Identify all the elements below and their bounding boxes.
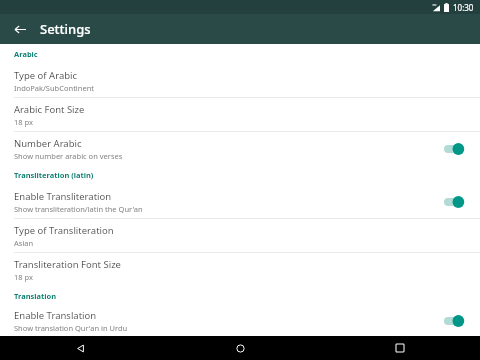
- staticText: Translation: [14, 291, 57, 301]
- button[interactable]: Toggle: [440, 140, 466, 158]
- staticText: Asian: [14, 238, 34, 248]
- staticText: Show translation Qur'an in Urdu: [14, 323, 128, 333]
- button[interactable]: Type of Transliteration: [0, 219, 480, 252]
- button[interactable]: Type of Arabic: [0, 64, 480, 97]
- staticText: Arabic: [14, 49, 38, 59]
- button[interactable]: Arabic Font Size: [0, 98, 480, 131]
- staticText: IndoPak/SubContinent: [14, 83, 94, 93]
- staticText: Transliteration (latin): [14, 170, 94, 180]
- staticText: Number Arabic: [14, 137, 82, 150]
- staticText: Show transliteration/latin the Qur'an: [14, 204, 143, 214]
- staticText: Type of Transliteration: [14, 224, 114, 237]
- button[interactable]: Enable Transliteration: [0, 185, 480, 218]
- button[interactable]: Enable Translation: [0, 306, 480, 336]
- staticText: Type of Arabic: [14, 69, 78, 82]
- button[interactable]: Transliteration Font Size: [0, 253, 480, 286]
- staticText: Enable Translation: [14, 309, 97, 322]
- button[interactable]: Recent apps: [320, 336, 480, 360]
- button[interactable]: Back: [10, 19, 30, 39]
- staticText: 18 px: [14, 117, 33, 127]
- staticText: Arabic Font Size: [14, 103, 85, 116]
- staticText: Show number arabic on verses: [14, 151, 123, 161]
- staticText: Transliteration Font Size: [14, 258, 121, 271]
- staticText: 10:30: [453, 2, 474, 13]
- staticText: Enable Transliteration: [14, 190, 112, 203]
- button[interactable]: Number Arabic: [0, 132, 480, 165]
- staticText: Settings: [40, 20, 91, 38]
- button[interactable]: Toggle: [440, 193, 466, 211]
- button[interactable]: Back: [0, 336, 160, 360]
- button[interactable]: Toggle: [440, 312, 466, 330]
- button[interactable]: Home: [160, 336, 320, 360]
- staticText: 18 px: [14, 272, 33, 282]
